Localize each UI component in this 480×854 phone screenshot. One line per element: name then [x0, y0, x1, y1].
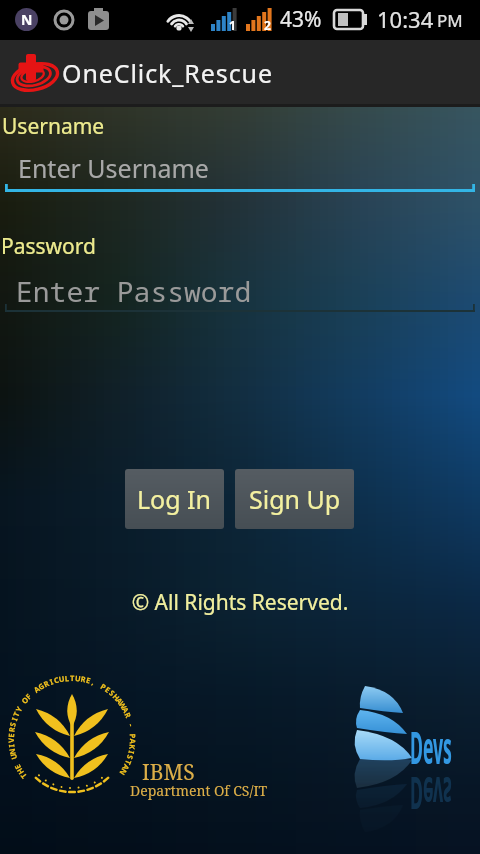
staticText: © All Rights Reserved.: [0, 588, 480, 617]
staticText: 10:34: [377, 4, 434, 34]
staticText: Password: [1, 232, 96, 261]
button[interactable]: Sign Up: [235, 469, 354, 529]
staticText: 1: [229, 17, 236, 33]
button[interactable]: Enter Username: [0, 140, 480, 193]
staticText: OneClick_Rescue: [62, 56, 273, 90]
button[interactable]: Enter Password: [0, 260, 480, 313]
staticText: Department Of CS/IT: [130, 781, 268, 800]
staticText: Devs: [410, 717, 452, 777]
staticText: Enter Username: [18, 151, 209, 185]
staticText: Log In: [137, 482, 212, 516]
staticText: N: [21, 10, 33, 29]
staticText: IBMS: [142, 758, 195, 787]
staticText: 2: [264, 17, 271, 33]
staticText: Sign Up: [249, 482, 341, 516]
staticText: Devs: [410, 764, 452, 824]
staticText: Enter Password: [16, 272, 252, 310]
staticText: Username: [2, 112, 105, 141]
button[interactable]: Log In: [125, 469, 224, 529]
staticText: PM: [437, 9, 463, 32]
staticText: 43%: [280, 5, 322, 34]
